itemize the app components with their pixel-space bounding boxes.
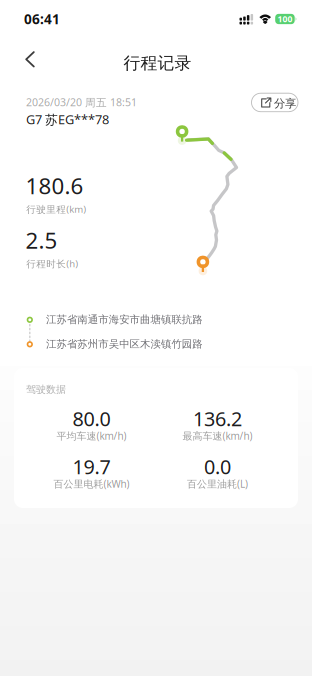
staticText: 136.2 — [193, 405, 242, 432]
staticText: 19.7 — [72, 453, 110, 480]
staticText: 行程记录 — [123, 52, 191, 74]
staticText: 2026/03/20 周五 18:51 — [26, 95, 137, 109]
staticText: 180.6 — [25, 170, 83, 201]
staticText: 江苏省苏州市吴中区木渎镇竹园路 — [46, 337, 202, 351]
staticText: 2.5 — [25, 225, 57, 255]
staticText: 80.0 — [72, 405, 110, 432]
staticText: 百公里电耗(kWh) — [53, 477, 129, 491]
staticText: 最高车速(km/h) — [182, 429, 252, 443]
staticText: 100 — [277, 13, 292, 25]
staticText: 驾驶数据 — [26, 383, 66, 396]
staticText: 0.0 — [204, 453, 231, 480]
staticText: 平均车速(km/h) — [56, 429, 126, 443]
staticText: 分享 — [274, 96, 296, 111]
button[interactable]: 返回 — [15, 44, 45, 74]
staticText: 行驶里程(km) — [26, 202, 86, 216]
staticText: 百公里油耗(L) — [187, 477, 248, 491]
button[interactable]: 分享 — [251, 93, 298, 112]
staticText: 行程时长(h) — [26, 257, 78, 270]
staticText: 06:41 — [24, 10, 60, 28]
staticText: 江苏省南通市海安市曲塘镇联抗路 — [46, 313, 202, 326]
staticText: G7 苏EG***78 — [26, 110, 109, 128]
